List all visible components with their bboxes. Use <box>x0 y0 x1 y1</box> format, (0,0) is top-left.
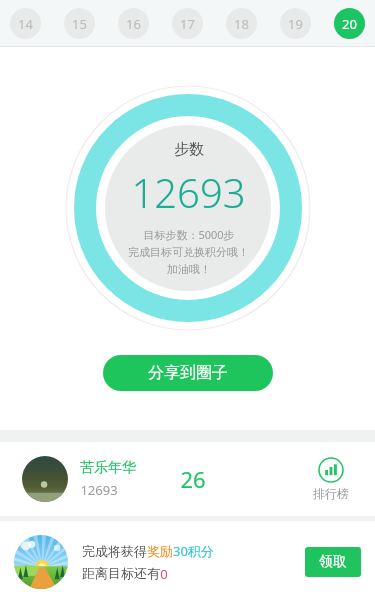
button[interactable]: 18 <box>226 8 257 39</box>
staticText: 26 <box>180 464 206 494</box>
button[interactable]: 15 <box>64 8 95 39</box>
staticText: 15 <box>72 15 87 33</box>
staticText: 目标步数：5000步 <box>143 227 235 242</box>
staticText: 20 <box>342 15 357 33</box>
staticText: 领取 <box>319 553 347 571</box>
staticText: 18 <box>234 15 249 33</box>
button[interactable]: 20 <box>334 8 365 39</box>
button[interactable]: 分享到圈子 <box>103 355 273 391</box>
staticText: 19 <box>288 15 303 33</box>
staticText: 距离目标还有 <box>82 565 160 581</box>
button[interactable]: 16 <box>118 8 149 39</box>
button[interactable]: 苦乐年华 <box>0 442 375 516</box>
button[interactable]: 19 <box>280 8 311 39</box>
staticText: 步数 <box>174 140 204 159</box>
staticText: 排行榜 <box>313 486 349 501</box>
staticText: 0 <box>160 565 168 583</box>
staticText: 16 <box>126 15 141 33</box>
button[interactable]: 领取 <box>305 547 361 577</box>
staticText: 加油哦！ <box>167 262 211 276</box>
staticText: 14 <box>18 15 33 33</box>
staticText: 17 <box>180 15 195 33</box>
staticText: 苦乐年华 <box>80 459 136 477</box>
button[interactable]: 17 <box>172 8 203 39</box>
button[interactable]: 14 <box>10 8 41 39</box>
staticText: 完成将获得奖励30积分 <box>82 542 214 560</box>
staticText: 完成目标可兑换积分哦！ <box>128 245 249 259</box>
staticText: 12693 <box>131 165 246 219</box>
other: 排行榜 <box>318 457 344 483</box>
button[interactable]: 排行榜 <box>309 453 353 505</box>
staticText: 12693 <box>80 481 118 499</box>
staticText: 分享到圈子 <box>148 363 228 383</box>
